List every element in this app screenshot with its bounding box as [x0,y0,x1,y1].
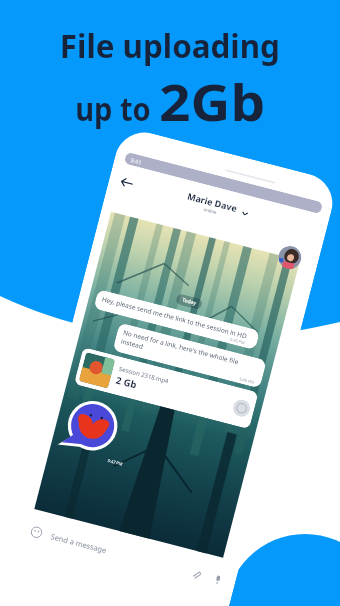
button[interactable]: Emoji [29,525,44,540]
staticText: online [203,206,218,215]
staticText: 2 Gb [115,374,138,391]
staticText: 9:41 [130,156,142,166]
button[interactable]: Session 2318.mp4 [79,352,254,424]
button[interactable]: Download [231,398,252,418]
staticText: No need for a link, here's the whole fil… [120,328,260,380]
staticText: Session 2318.mp4 [118,365,169,385]
staticText: 5:46 PM [239,376,255,385]
staticText: Send a message [50,531,108,555]
other: Back [117,173,137,192]
staticText: 2Gb [159,66,266,135]
staticText: 5:47 PM [107,458,124,467]
button[interactable]: Back [115,163,320,249]
staticText: 5:45 PM [229,337,246,345]
staticText: Today [181,296,197,307]
button[interactable]: Voice message [211,573,225,586]
button[interactable]: Attach file [190,567,203,581]
staticText: Marie Dave [186,190,239,214]
button[interactable]: Profile photo [276,243,304,271]
staticText: Hey, please send me the link to the sess… [101,294,248,341]
staticText: up to [75,86,151,131]
staticText: File uploading [60,23,280,68]
